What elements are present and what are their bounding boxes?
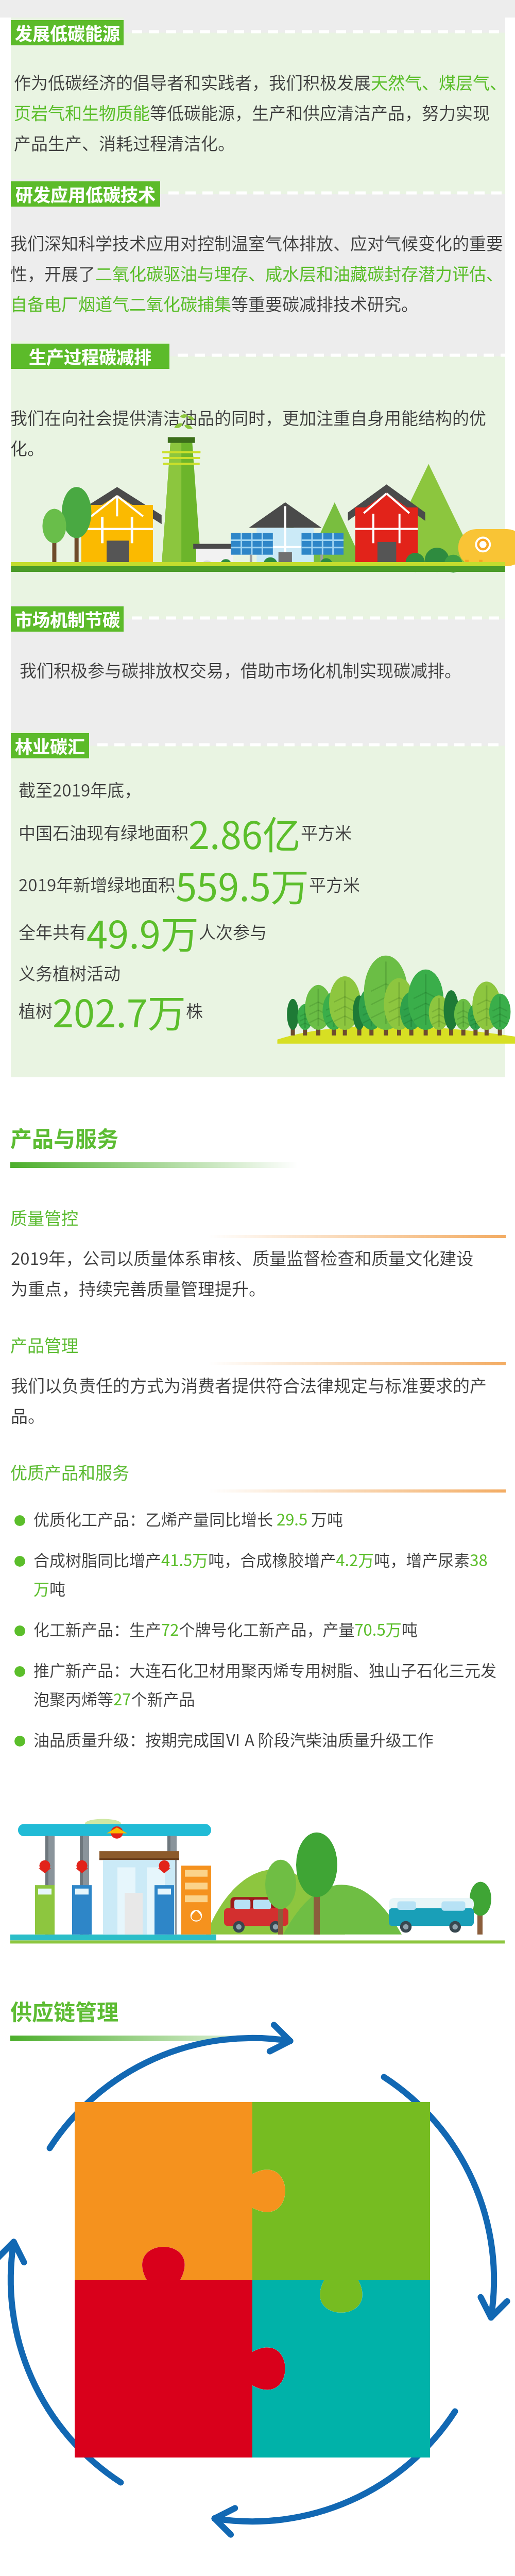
staticText: 合成树脂同比增产41.5万吨，合成橡胶增产4.2万吨，增产尿素38万吨 (33, 1548, 497, 1600)
staticText: 优质化工产品：乙烯产量同比增长 29.5 万吨 (33, 1507, 497, 1530)
staticText: 我们以负责任的方式为消费者提供符合法律规定与标准要求的产品。 (11, 1372, 509, 1428)
staticText: 产品管理 (10, 1332, 78, 1357)
staticText: 平方米 (301, 820, 352, 844)
staticText: 供应链管理 (10, 1995, 119, 2026)
staticText: 产品与服务 (10, 1122, 119, 1153)
staticText: 2.86亿 (188, 805, 301, 860)
staticText: 植树 (19, 998, 53, 1023)
staticText: 油品质量升级：按期完成国Ⅵ A 阶段汽柴油质量升级工作 (33, 1727, 497, 1751)
staticText: 全年共有 (19, 919, 87, 944)
staticText: 平方米 (309, 872, 360, 896)
staticText: 2019年新增绿地面积 (19, 872, 176, 896)
staticText: 我们深知科学技术应用对控制温室气体排放、应对气候变化的重要 性，开展了二氧化碳驱… (10, 230, 509, 316)
staticText: 2019年，公司以质量体系审核、质量监督检查和质量文化建设 为重点，持续完善质量… (11, 1245, 509, 1300)
staticText: 林业碳汇 (15, 733, 85, 758)
staticText: 生产过程碳减排 (29, 344, 151, 369)
staticText: 作为低碳经济的倡导者和实践者，我们积极发展天然气、煤层气、 页岩气和生物质能等低… (14, 70, 512, 155)
staticText: 株 (186, 998, 203, 1023)
staticText: 人次参与 (199, 919, 267, 944)
staticText: 中国石油现有绿地面积 (19, 820, 188, 844)
staticText: 推广新产品：大连石化卫材用聚丙烯专用树脂、独山子石化三元发泡聚丙烯等27个新产品 (33, 1658, 497, 1710)
staticText: 化工新产品：生产72个牌号化工新产品，产量70.5万吨 (33, 1617, 497, 1640)
staticText: 研发应用低碳技术 (15, 181, 156, 207)
staticText: 质量管控 (10, 1205, 78, 1230)
staticText: 我们积极参与碳排放权交易，借助市场化机制实现碳减排。 (20, 657, 515, 682)
staticText: 202.7万 (53, 983, 186, 1038)
staticText: 559.5万 (176, 857, 309, 912)
staticText: 截至2019年底， (19, 777, 515, 802)
staticText: 49.9万 (87, 904, 199, 959)
staticText: 发展低碳能源 (15, 20, 120, 45)
staticText: 我们在向社会提供清洁油品的同时，更加注重自身用能结构的优化。 (10, 405, 509, 460)
staticText: 优质产品和服务 (10, 1460, 129, 1484)
staticText: 义务植树活动 (19, 960, 121, 985)
staticText: 市场机制节碳 (15, 606, 120, 632)
